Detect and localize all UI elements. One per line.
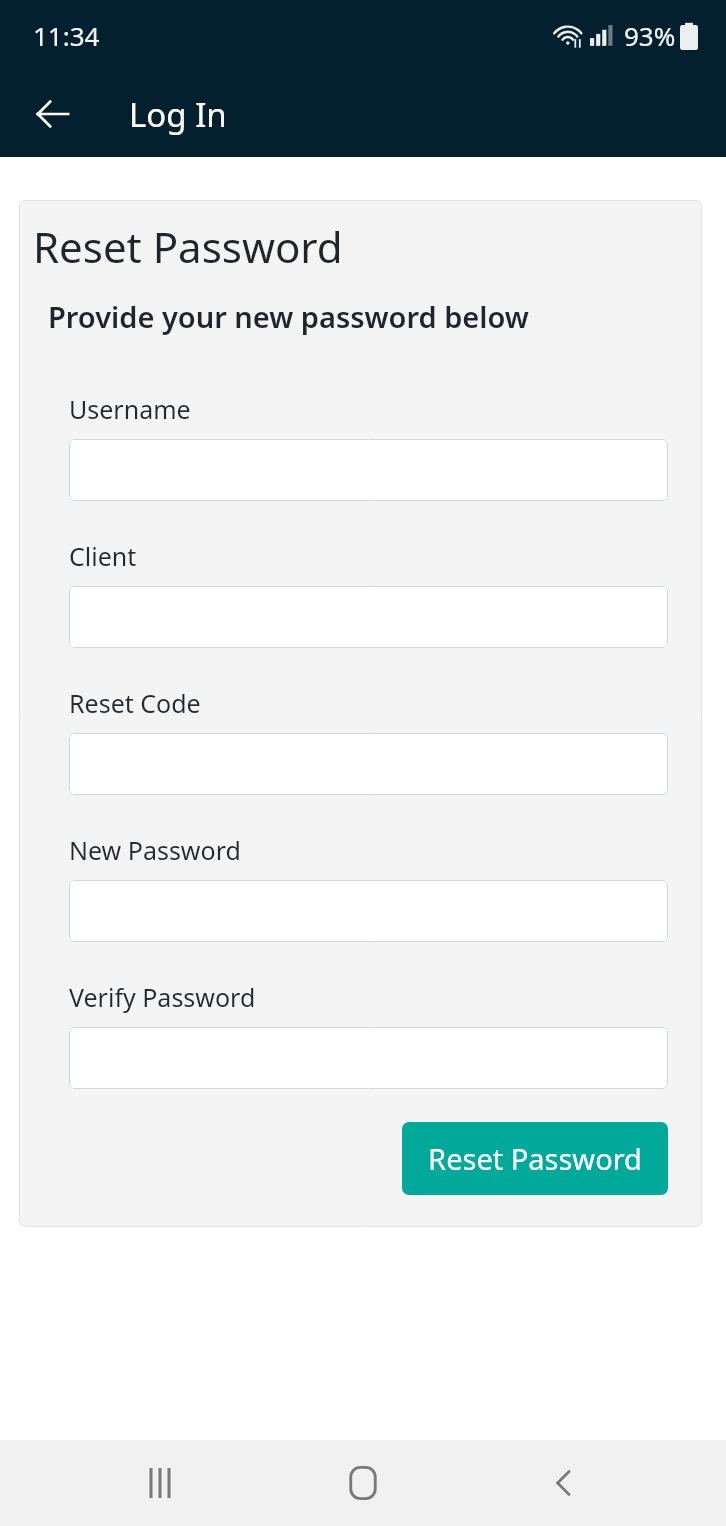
button[interactable] [69, 733, 668, 795]
staticText: 93% [624, 18, 676, 53]
button[interactable] [69, 439, 668, 501]
button[interactable] [69, 1027, 668, 1089]
button[interactable]: Back [528, 1447, 600, 1519]
button[interactable] [69, 880, 668, 942]
staticText: Reset Password [33, 218, 343, 275]
staticText: 11:34 [33, 18, 100, 53]
staticText: Verify Password [69, 980, 256, 1014]
button[interactable]: Recent apps [124, 1447, 196, 1519]
staticText: Client [69, 539, 137, 573]
staticText: Log In [129, 92, 227, 137]
staticText: Reset Code [69, 686, 201, 720]
staticText: Provide your new password below [48, 297, 529, 336]
staticText: Reset Password [428, 1139, 642, 1178]
button[interactable]: Home [327, 1447, 399, 1519]
button[interactable]: Reset Password [402, 1122, 668, 1195]
staticText: New Password [69, 833, 241, 867]
staticText: Username [69, 392, 191, 426]
button[interactable] [69, 586, 668, 648]
button[interactable]: Back [20, 81, 86, 147]
